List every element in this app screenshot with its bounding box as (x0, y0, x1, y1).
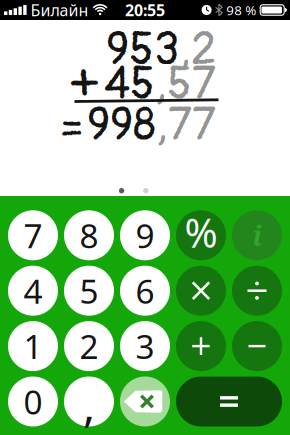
staticText: % (184, 206, 217, 259)
button[interactable]: 5 (64, 266, 114, 316)
staticText: ,57 (155, 56, 216, 113)
button[interactable]: 8 (64, 210, 114, 260)
staticText: = (58, 99, 85, 156)
button[interactable]: 0 (8, 376, 58, 426)
staticText: 2 (79, 324, 98, 368)
button[interactable]: Delete (120, 376, 170, 426)
button[interactable]: Minus (232, 321, 282, 371)
button[interactable]: 2 (64, 321, 114, 371)
staticText: 9 (135, 213, 154, 257)
staticText: 20:55 (125, 0, 165, 21)
staticText: 6 (135, 269, 154, 313)
button[interactable]: 9 (120, 210, 170, 260)
button[interactable]: 1 (8, 321, 58, 371)
staticText: 953 (106, 21, 179, 78)
staticText: 45 (104, 56, 155, 113)
button[interactable]: Percent (176, 210, 226, 260)
staticText: 7 (23, 213, 42, 257)
staticText: 998 (87, 97, 156, 154)
staticText: i (252, 217, 261, 253)
button[interactable]: 4 (8, 266, 58, 316)
button[interactable]: Equals (176, 376, 282, 426)
staticText: 8 (79, 213, 98, 257)
button[interactable]: Info (232, 210, 282, 260)
staticText: , (83, 374, 95, 435)
staticText: 98 % (226, 1, 256, 19)
button[interactable]: , (64, 376, 114, 426)
staticText: 1 (23, 324, 42, 368)
button[interactable]: Plus (176, 321, 226, 371)
staticText: 0 (23, 379, 42, 424)
staticText: 3 (135, 324, 154, 368)
button[interactable]: Divide (232, 266, 282, 316)
button[interactable]: 3 (120, 321, 170, 371)
staticText: 5 (79, 269, 98, 313)
button[interactable]: 7 (8, 210, 58, 260)
staticText: ,2 (179, 21, 216, 78)
button[interactable]: Multiply (176, 266, 226, 316)
staticText: + (71, 54, 97, 111)
staticText: Билайн (31, 0, 89, 21)
button[interactable]: 6 (120, 266, 170, 316)
staticText: 4 (23, 269, 42, 313)
staticText: ,77 (156, 97, 216, 154)
